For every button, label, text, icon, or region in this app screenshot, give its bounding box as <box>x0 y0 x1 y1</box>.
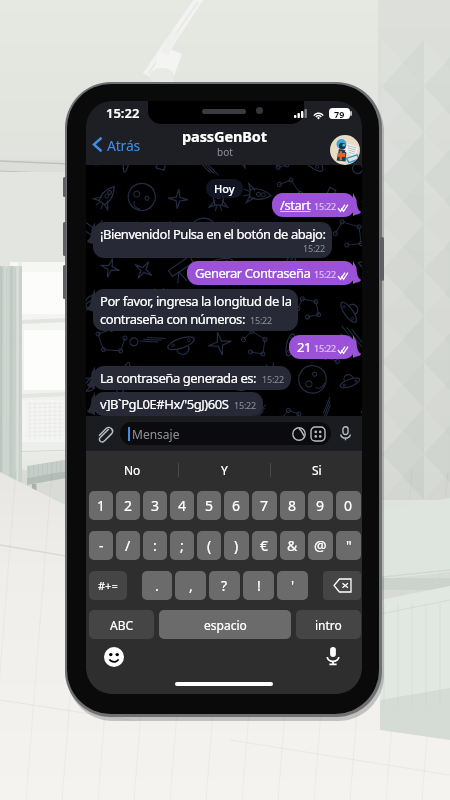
button[interactable]: #+= <box>89 571 127 600</box>
staticText: 7 <box>260 496 269 515</box>
staticText: Si <box>312 462 322 478</box>
button[interactable]: 21 <box>289 335 355 359</box>
staticText: ¡Bienvenido! Pulsa en el botón de abajo: <box>100 225 326 243</box>
button[interactable]: Por favor, ingresa la longitud de la <box>93 289 298 331</box>
staticText: La contraseña generada es: <box>100 369 257 387</box>
staticText: Mensaje <box>132 426 180 442</box>
button[interactable]: Emoji keyboard <box>104 647 124 667</box>
button[interactable]: Bot profile photo <box>330 135 360 165</box>
button[interactable]: /start <box>272 193 355 217</box>
button[interactable]: . <box>142 571 172 600</box>
button[interactable]: ' <box>277 571 308 600</box>
button[interactable]: No <box>86 451 178 489</box>
staticText: 15:22 <box>106 104 140 122</box>
staticText: Y <box>221 462 228 478</box>
button[interactable]: 7 <box>252 491 277 520</box>
staticText: 5 <box>205 496 214 515</box>
button[interactable]: 0 <box>336 491 361 520</box>
button[interactable]: Backspace <box>323 571 361 600</box>
staticText: ' <box>291 576 295 595</box>
staticText: 2 <box>124 496 133 515</box>
button[interactable]: ( <box>197 531 221 560</box>
staticText: Hoy <box>214 181 235 196</box>
button[interactable]: v]B`PgL0E#Hx/'5gJ)60S <box>93 392 263 416</box>
staticText: 15:22 <box>303 242 326 254</box>
staticText: No <box>124 462 141 478</box>
button[interactable]: 2 <box>116 491 140 520</box>
staticText: , <box>189 576 193 595</box>
button[interactable]: Generar Contraseña <box>187 261 355 285</box>
staticText: #+= <box>98 578 118 593</box>
button[interactable]: 8 <box>280 491 305 520</box>
button[interactable]: Atrás <box>90 131 144 158</box>
button[interactable]: ABC <box>89 610 154 639</box>
staticText: /start <box>280 196 311 214</box>
button[interactable]: " <box>336 531 361 560</box>
staticText: Atrás <box>107 136 141 155</box>
staticText: 15:22 <box>250 314 273 326</box>
button[interactable]: intro <box>296 610 361 639</box>
staticText: passGenBot <box>182 126 267 146</box>
button[interactable]: 3 <box>143 491 167 520</box>
button[interactable]: - <box>89 531 113 560</box>
staticText: 6 <box>232 496 241 515</box>
staticText: : <box>153 536 157 555</box>
button[interactable]: Mensaje <box>120 422 331 445</box>
button[interactable]: Attach file <box>94 424 113 443</box>
button[interactable]: 5 <box>197 491 221 520</box>
staticText: ( <box>207 536 212 555</box>
staticText: 1 <box>97 496 106 515</box>
button[interactable]: , <box>175 571 206 600</box>
staticText: 15:22 <box>262 373 285 385</box>
button[interactable]: & <box>280 531 305 560</box>
button[interactable]: ! <box>243 571 274 600</box>
staticText: 79 <box>334 108 345 119</box>
staticText: 15:22 <box>314 268 337 280</box>
staticText: Generar Contraseña <box>195 264 311 282</box>
staticText: ? <box>221 576 228 595</box>
staticText: 4 <box>178 496 187 515</box>
staticText: ) <box>234 536 239 555</box>
staticText: 0 <box>344 496 353 515</box>
staticText: v]B`PgL0E#Hx/'5gJ)60S <box>100 395 229 413</box>
button[interactable]: @ <box>308 531 333 560</box>
staticText: - <box>99 536 104 555</box>
staticText: " <box>346 536 352 555</box>
button[interactable]: / <box>116 531 140 560</box>
button[interactable]: 1 <box>89 491 113 520</box>
staticText: 9 <box>316 496 325 515</box>
button[interactable]: Voice message <box>338 426 353 441</box>
button[interactable]: 4 <box>170 491 194 520</box>
staticText: ABC <box>110 617 134 633</box>
staticText: € <box>260 536 269 555</box>
button[interactable]: espacio <box>159 610 291 639</box>
staticText: & <box>287 536 298 555</box>
button[interactable]: La contraseña generada es: <box>93 366 291 390</box>
button[interactable]: ) <box>224 531 249 560</box>
staticText: ; <box>180 536 184 555</box>
button[interactable]: 9 <box>308 491 333 520</box>
button[interactable]: ¡Bienvenido! Pulsa en el botón de abajo: <box>93 222 332 258</box>
button[interactable]: ? <box>209 571 240 600</box>
button[interactable]: ; <box>170 531 194 560</box>
staticText: 15:22 <box>314 200 337 212</box>
staticText: 8 <box>288 496 297 515</box>
staticText: ! <box>257 576 261 595</box>
button[interactable]: Y <box>179 451 270 489</box>
staticText: . <box>155 576 159 595</box>
staticText: bot <box>217 145 233 159</box>
staticText: @ <box>314 536 327 555</box>
staticText: 3 <box>151 496 160 515</box>
staticText: intro <box>315 617 342 633</box>
staticText: Por favor, ingresa la longitud de la <box>100 292 292 310</box>
button[interactable]: 6 <box>224 491 249 520</box>
staticText: 15:22 <box>314 342 337 354</box>
staticText: contraseña con números: <box>100 310 245 328</box>
button[interactable]: Si <box>271 451 362 489</box>
button[interactable]: : <box>143 531 167 560</box>
button[interactable]: Dictation <box>324 647 342 665</box>
staticText: 21 <box>297 338 311 356</box>
staticText: / <box>125 536 131 555</box>
button[interactable]: € <box>252 531 277 560</box>
staticText: espacio <box>204 617 247 633</box>
